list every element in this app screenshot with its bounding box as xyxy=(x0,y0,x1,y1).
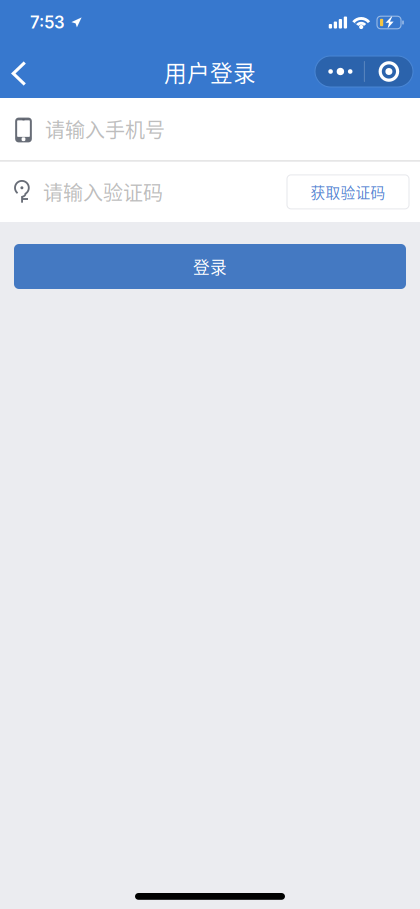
staticText: 请输入验证码 xyxy=(43,177,163,206)
button[interactable]: 返回 xyxy=(0,46,38,96)
staticText: 7:53 xyxy=(30,12,65,33)
button[interactable]: 获取验证码 xyxy=(287,175,409,209)
staticText: 登录 xyxy=(193,254,227,278)
button[interactable]: 更多 xyxy=(315,56,413,87)
button[interactable]: 登录 xyxy=(14,244,406,289)
staticText: 请输入手机号 xyxy=(45,114,165,143)
staticText: 用户登录 xyxy=(164,55,256,88)
staticText: 获取验证码 xyxy=(310,181,385,202)
